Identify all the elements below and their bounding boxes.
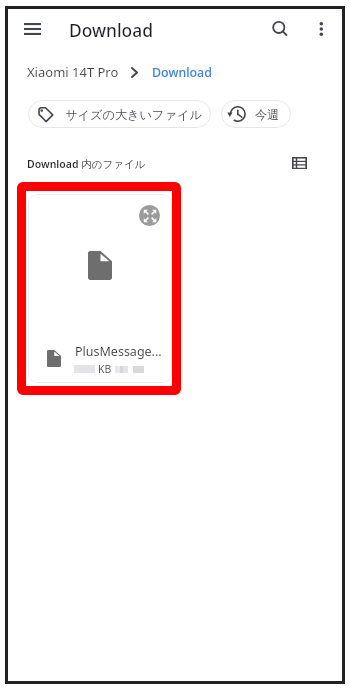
staticText: サイズの大きいファイル bbox=[65, 107, 202, 122]
button[interactable]: 今週 bbox=[221, 100, 291, 128]
button[interactable]: Search bbox=[261, 10, 299, 48]
button[interactable]: サイズの大きいファイル bbox=[28, 100, 211, 128]
button[interactable]: Xiaomi 14T Pro bbox=[27, 63, 119, 81]
staticText: KB bbox=[98, 362, 112, 376]
staticText: Download bbox=[69, 18, 153, 42]
button[interactable]: Expand preview bbox=[139, 205, 160, 226]
button[interactable]: Switch to list view bbox=[283, 147, 315, 179]
staticText: Download 内のファイル bbox=[27, 157, 146, 171]
button[interactable]: Navigation menu bbox=[13, 10, 51, 48]
staticText: PlusMessage... bbox=[75, 343, 162, 360]
button[interactable]: Expand preview bbox=[28, 194, 172, 383]
staticText: 今週 bbox=[255, 107, 280, 122]
button[interactable]: More options bbox=[302, 10, 340, 48]
button[interactable]: Download bbox=[152, 64, 212, 81]
